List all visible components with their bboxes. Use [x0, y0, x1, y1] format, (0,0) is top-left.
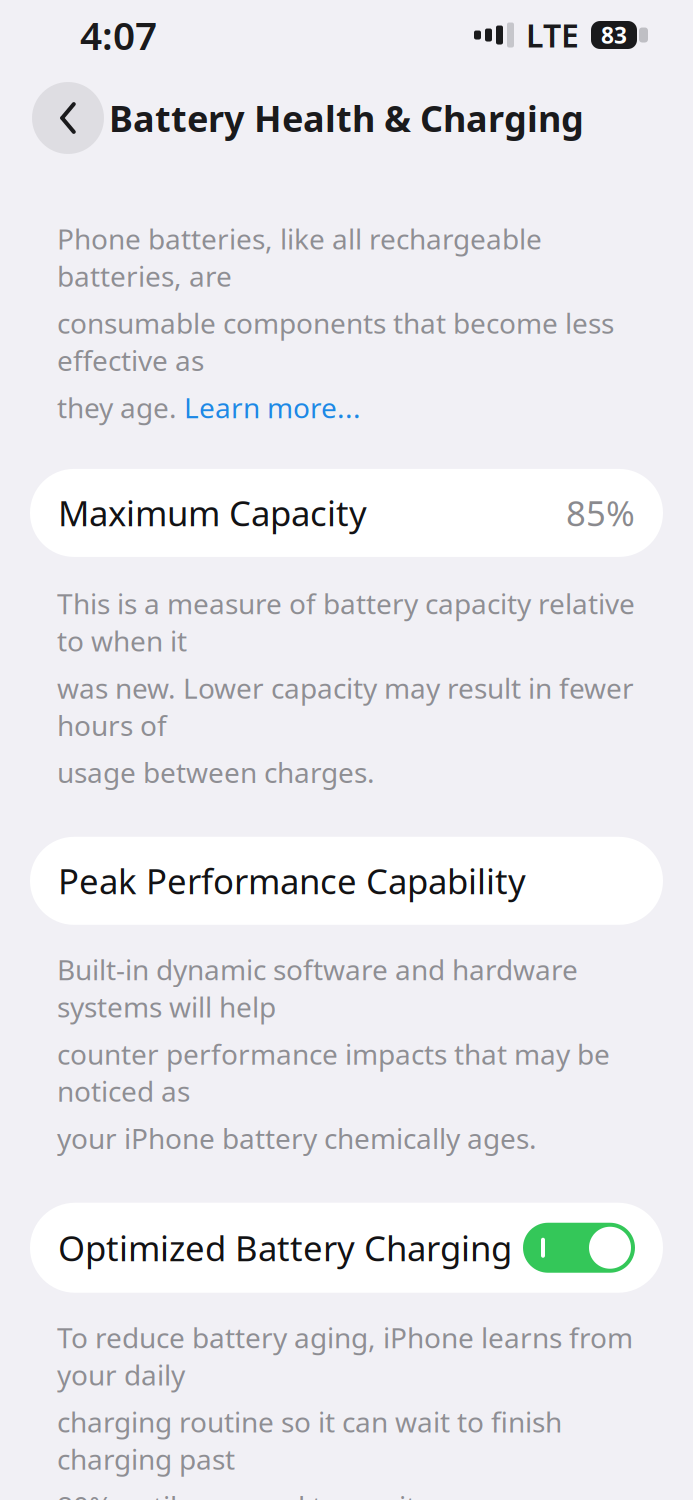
staticText: counter performance impacts that may be … — [57, 1035, 610, 1110]
button[interactable]: Maximum Capacity — [0, 469, 693, 557]
staticText: LTE — [526, 14, 579, 56]
staticText: your iPhone battery chemically ages. — [57, 1120, 537, 1157]
staticText: charging routine so it can wait to finis… — [57, 1403, 562, 1477]
staticText: Optimized Battery Charging — [58, 1225, 512, 1271]
staticText: was new. Lower capacity may result in fe… — [57, 669, 634, 744]
staticText: Battery Health & Charging — [109, 94, 584, 142]
staticText: Maximum Capacity — [58, 490, 367, 536]
staticText: usage between charges. — [57, 754, 375, 791]
staticText: This is a measure of battery capacity re… — [57, 585, 635, 659]
staticText: Peak Performance Capability — [58, 858, 526, 904]
button[interactable]: Back — [32, 82, 104, 154]
staticText: 83 — [601, 20, 627, 50]
staticText: Built-in dynamic software and hardware s… — [57, 951, 578, 1025]
button[interactable]: Optimized Battery Charging — [0, 1203, 693, 1293]
staticText: Phone batteries, like all rechargeable b… — [57, 220, 542, 294]
staticText: 80% until you need to use it. — [57, 1487, 424, 1500]
staticText: they age. — [57, 389, 184, 426]
staticText: consumable components that become less e… — [57, 304, 614, 379]
staticText: 85% — [566, 490, 635, 536]
button[interactable]: Learn more... — [184, 389, 361, 426]
button[interactable]: Peak Performance Capability — [0, 837, 693, 925]
staticText: To reduce battery aging, iPhone learns f… — [57, 1319, 633, 1393]
staticText: Learn more... — [184, 389, 361, 426]
staticText: 4:07 — [80, 9, 157, 61]
